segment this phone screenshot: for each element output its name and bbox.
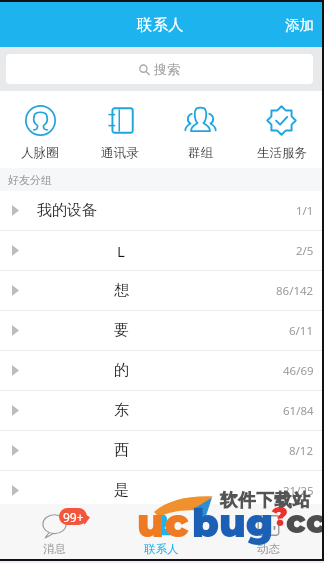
staticText: 46/69 bbox=[283, 363, 314, 379]
staticText: 动态 bbox=[257, 542, 280, 556]
staticText: 的 bbox=[114, 361, 129, 380]
other: Address book bbox=[105, 105, 136, 136]
other: Contacts circle bbox=[25, 105, 56, 136]
staticText: 生活服务 bbox=[257, 145, 307, 161]
staticText: 想 bbox=[114, 281, 129, 300]
staticText: 人脉圈 bbox=[21, 145, 59, 161]
button[interactable]: Groups bbox=[160, 91, 241, 168]
staticText: 2/5 bbox=[296, 243, 314, 259]
staticText: 61/84 bbox=[283, 403, 314, 419]
staticText: 86/142 bbox=[276, 283, 314, 299]
staticText: 要 bbox=[114, 321, 129, 340]
staticText: 添加 bbox=[285, 16, 314, 34]
other: Life services bbox=[266, 105, 297, 136]
staticText: 西 bbox=[114, 441, 129, 460]
staticText: cc bbox=[286, 502, 324, 541]
button[interactable]: 西 bbox=[0, 431, 322, 471]
staticText: 联系人 bbox=[144, 542, 179, 556]
button[interactable]: 搜索 bbox=[6, 54, 313, 84]
button[interactable]: 要 bbox=[0, 311, 322, 351]
button[interactable]: Feed bbox=[215, 504, 322, 559]
button[interactable]: Life services bbox=[241, 91, 322, 168]
staticText: 是 bbox=[114, 481, 129, 500]
staticText: 我的设备 bbox=[37, 201, 97, 220]
button[interactable]: 我的设备 bbox=[0, 191, 322, 231]
staticText: 联系人 bbox=[137, 15, 184, 35]
button[interactable]: 东 bbox=[0, 391, 322, 431]
staticText: 软件下载站 bbox=[220, 489, 311, 511]
button[interactable]: Messages bbox=[0, 504, 108, 559]
button[interactable]: Address book bbox=[80, 91, 160, 168]
button[interactable]: 添加 bbox=[277, 7, 322, 43]
button[interactable]: 是 bbox=[0, 471, 322, 511]
staticText: ? bbox=[272, 501, 288, 533]
staticText: 1/1 bbox=[296, 203, 314, 219]
button[interactable]: 想 bbox=[0, 271, 322, 311]
staticText: 好友分组 bbox=[8, 173, 52, 187]
button[interactable]: L bbox=[0, 231, 322, 271]
button[interactable]: Contacts circle bbox=[0, 91, 80, 168]
staticText: bug bbox=[192, 500, 274, 547]
staticText: 东 bbox=[114, 401, 129, 420]
staticText: L bbox=[117, 241, 125, 261]
staticText: 8/12 bbox=[289, 443, 314, 459]
staticText: uc bbox=[137, 500, 190, 547]
button[interactable]: 的 bbox=[0, 351, 322, 391]
staticText: 通讯录 bbox=[101, 145, 139, 161]
staticText: 99+ bbox=[63, 509, 84, 525]
staticText: 消息 bbox=[43, 542, 66, 556]
staticText: 群组 bbox=[188, 145, 213, 161]
staticText: 21/25 bbox=[283, 483, 314, 499]
staticText: 6/11 bbox=[289, 323, 314, 339]
other: Groups bbox=[185, 105, 216, 136]
button[interactable]: Contacts bbox=[108, 504, 215, 559]
staticText: 搜索 bbox=[154, 61, 180, 77]
